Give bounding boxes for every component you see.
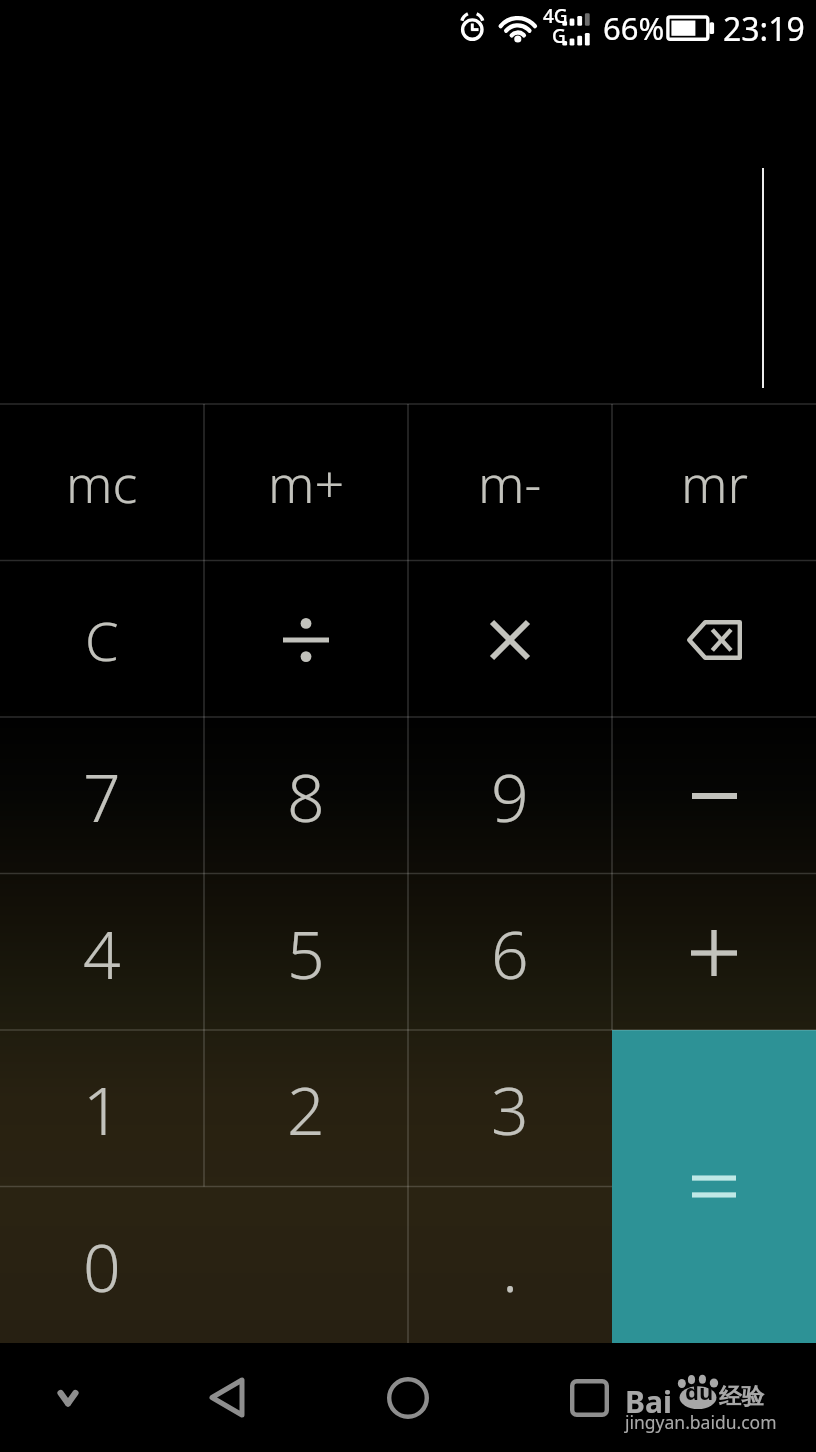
staticText: . [502, 1221, 519, 1311]
staticText: G [552, 23, 566, 49]
staticText: mc [66, 447, 138, 518]
staticText: 9 [491, 751, 529, 841]
staticText: 1 [83, 1064, 121, 1154]
staticText: 66% [603, 7, 665, 49]
button[interactable]: 4 [0, 874, 204, 1031]
button[interactable]: Equals [612, 1030, 816, 1343]
staticText: 经验 [719, 1382, 764, 1410]
button[interactable]: Home [387, 1377, 429, 1419]
button[interactable]: Recents [570, 1379, 609, 1417]
staticText: Bai [625, 1381, 672, 1422]
button[interactable]: 5 [204, 874, 408, 1031]
other: Multiply [492, 622, 528, 658]
staticText: 8 [287, 751, 325, 841]
button[interactable]: Back [209, 1377, 245, 1418]
button[interactable]: mr [612, 404, 816, 561]
button[interactable]: Hide keyboard [48, 1383, 88, 1413]
other: Backspace [687, 620, 742, 660]
button[interactable]: 9 [408, 717, 612, 874]
button[interactable]: 3 [408, 1030, 612, 1187]
button[interactable]: 0 [0, 1187, 204, 1344]
staticText: 4G [543, 3, 568, 29]
button[interactable]: Backspace [612, 561, 816, 718]
button[interactable]: Plus [612, 874, 816, 1031]
staticText: 7 [83, 751, 121, 841]
staticText: 23:19 [723, 7, 805, 51]
button[interactable]: 1 [0, 1030, 204, 1187]
staticText: 3 [491, 1064, 529, 1154]
button[interactable]: Divide [204, 561, 408, 718]
button[interactable]: C [0, 561, 204, 718]
staticText: 4 [83, 908, 121, 998]
button[interactable]: m- [408, 404, 612, 561]
staticText: 0 [83, 1221, 121, 1311]
staticText: m+ [268, 447, 345, 518]
button[interactable]: Minus [612, 717, 816, 874]
button[interactable]: mc [0, 404, 204, 561]
other: Divide [283, 619, 329, 661]
button[interactable]: m+ [204, 404, 408, 561]
button[interactable]: . [408, 1187, 612, 1344]
staticText: mr [681, 447, 748, 518]
button[interactable]: Multiply [408, 561, 612, 718]
staticText: C [85, 603, 119, 677]
button[interactable]: 8 [204, 717, 408, 874]
staticText: 5 [287, 908, 325, 998]
staticText: 6 [491, 908, 529, 998]
button[interactable]: 7 [0, 717, 204, 874]
button[interactable]: 2 [204, 1030, 408, 1187]
staticText: 2 [287, 1064, 325, 1154]
staticText: du [685, 1376, 714, 1406]
other: Plus [691, 930, 737, 976]
staticText: jingyan.baidu.com [625, 1410, 777, 1434]
button[interactable]: 6 [408, 874, 612, 1031]
staticText: m- [478, 447, 542, 518]
